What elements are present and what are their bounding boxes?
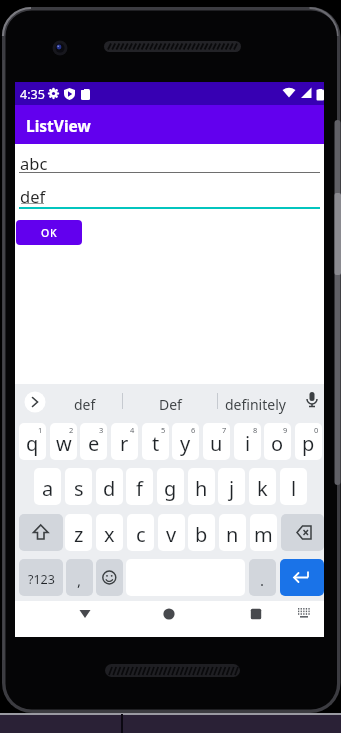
- button[interactable]: t: [142, 423, 169, 460]
- button[interactable]: [96, 559, 123, 596]
- staticText: k: [257, 475, 268, 502]
- staticText: e: [88, 430, 100, 457]
- button[interactable]: def: [60, 392, 110, 416]
- staticText: 8: [253, 425, 258, 435]
- staticText: m: [254, 521, 273, 548]
- staticText: 9: [283, 425, 288, 435]
- staticText: o: [271, 430, 284, 457]
- staticText: j: [229, 475, 235, 502]
- staticText: f: [136, 475, 143, 502]
- button[interactable]: ,: [66, 559, 93, 596]
- button[interactable]: q: [19, 423, 46, 460]
- button[interactable]: a: [34, 468, 61, 505]
- staticText: a: [42, 475, 54, 502]
- staticText: r: [120, 430, 129, 457]
- button[interactable]: m: [250, 514, 277, 551]
- button[interactable]: def: [19, 185, 320, 209]
- button[interactable]: p: [295, 423, 322, 460]
- staticText: c: [136, 521, 146, 548]
- staticText: 7: [222, 425, 227, 435]
- staticText: n: [226, 521, 239, 548]
- staticText: ,: [77, 570, 82, 590]
- button[interactable]: w: [50, 423, 77, 460]
- button[interactable]: s: [65, 468, 92, 505]
- staticText: Def: [159, 395, 182, 414]
- button[interactable]: n: [219, 514, 246, 551]
- button[interactable]: [302, 390, 322, 412]
- staticText: def: [20, 185, 46, 207]
- button[interactable]: v: [158, 514, 185, 551]
- button[interactable]: [280, 559, 324, 596]
- button[interactable]: j: [218, 468, 245, 505]
- staticText: w: [56, 430, 72, 457]
- button[interactable]: [157, 601, 181, 625]
- staticText: 5: [161, 425, 166, 435]
- button[interactable]: h: [188, 468, 215, 505]
- staticText: x: [104, 521, 115, 548]
- button[interactable]: .: [249, 559, 276, 596]
- staticText: 2: [69, 425, 74, 435]
- staticText: l: [291, 475, 297, 502]
- staticText: y: [180, 430, 191, 457]
- staticText: t: [152, 430, 160, 457]
- staticText: p: [302, 430, 315, 457]
- button[interactable]: k: [249, 468, 276, 505]
- staticText: OK: [41, 226, 58, 240]
- staticText: ?123: [28, 571, 55, 588]
- button[interactable]: i: [234, 423, 261, 460]
- button[interactable]: e: [80, 423, 107, 460]
- button[interactable]: definitely: [221, 392, 289, 416]
- button[interactable]: abc: [19, 146, 320, 174]
- staticText: q: [26, 430, 39, 457]
- button[interactable]: f: [126, 468, 153, 505]
- staticText: v: [166, 521, 177, 548]
- staticText: s: [74, 475, 84, 502]
- staticText: abc: [20, 152, 48, 174]
- button[interactable]: r: [111, 423, 138, 460]
- staticText: 6: [191, 425, 196, 435]
- staticText: 4:35: [20, 86, 45, 103]
- button[interactable]: g: [157, 468, 184, 505]
- staticText: b: [195, 521, 208, 548]
- staticText: 3: [99, 425, 104, 435]
- staticText: ListView: [26, 115, 91, 136]
- staticText: 1: [38, 425, 43, 435]
- button[interactable]: [293, 603, 315, 625]
- button[interactable]: Def: [145, 392, 195, 416]
- button[interactable]: z: [65, 514, 92, 551]
- button[interactable]: ?123: [19, 559, 63, 596]
- button[interactable]: x: [96, 514, 123, 551]
- button[interactable]: [244, 601, 268, 625]
- button[interactable]: o: [264, 423, 291, 460]
- staticText: h: [195, 475, 208, 502]
- staticText: 0: [314, 425, 319, 435]
- button[interactable]: [281, 514, 324, 551]
- staticText: 4: [130, 425, 135, 435]
- button[interactable]: l: [280, 468, 307, 505]
- staticText: .: [260, 570, 265, 590]
- button[interactable]: ListView: [15, 105, 324, 144]
- button[interactable]: b: [188, 514, 215, 551]
- button[interactable]: d: [96, 468, 123, 505]
- staticText: def: [74, 395, 96, 414]
- button[interactable]: [73, 601, 97, 625]
- button[interactable]: u: [203, 423, 230, 460]
- staticText: d: [103, 475, 116, 502]
- button[interactable]: [19, 388, 50, 414]
- button[interactable]: y: [172, 423, 199, 460]
- staticText: z: [74, 521, 84, 548]
- button[interactable]: [19, 514, 63, 551]
- staticText: i: [245, 430, 251, 457]
- staticText: u: [210, 430, 223, 457]
- staticText: definitely: [225, 395, 286, 414]
- button[interactable]: OK: [16, 220, 82, 245]
- staticText: g: [164, 475, 177, 502]
- button[interactable]: c: [127, 514, 154, 551]
